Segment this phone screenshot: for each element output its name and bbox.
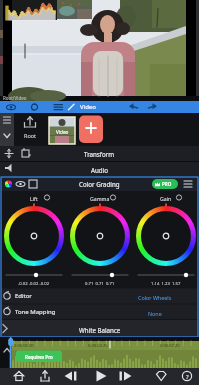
staticText: Transform (84, 150, 115, 158)
staticText: -0.02 -0.02 -0.02 (18, 281, 50, 287)
button[interactable] (48, 101, 66, 113)
staticText: Color Wheels (138, 294, 172, 301)
staticText: PRO (162, 181, 172, 187)
staticText: Tone Mapping (15, 308, 56, 316)
button[interactable] (1, 288, 198, 303)
staticText: Lift (30, 195, 38, 202)
staticText: Video (80, 103, 96, 111)
staticText: White Balance (79, 326, 121, 334)
staticText: Gain (160, 195, 172, 202)
button[interactable]: White Balance (0, 323, 199, 336)
button[interactable] (118, 368, 134, 385)
staticText: Audio (91, 166, 108, 174)
button[interactable] (72, 206, 128, 266)
staticText: 0.71 0.71 0.71 (85, 281, 115, 287)
button[interactable]: Audio (0, 162, 199, 177)
staticText: 0:00:03.25 (88, 343, 108, 349)
button[interactable] (1, 304, 198, 319)
button[interactable]: PRO (156, 179, 178, 189)
button[interactable] (26, 101, 42, 113)
button[interactable] (66, 101, 102, 113)
staticText: ? (186, 373, 189, 381)
button[interactable] (38, 368, 54, 385)
staticText: Color Grading (79, 180, 120, 188)
button[interactable] (49, 117, 75, 144)
staticText: Root/Video (3, 95, 27, 101)
button[interactable] (7, 206, 63, 266)
staticText: Requires Pro (25, 354, 53, 360)
button[interactable] (12, 368, 28, 385)
button[interactable] (153, 368, 169, 385)
button[interactable] (64, 368, 80, 385)
button[interactable] (79, 115, 103, 143)
button[interactable] (91, 368, 107, 385)
staticText: 1.14 1.23 1.57 (151, 281, 181, 287)
button[interactable]: Color Grading (0, 177, 199, 191)
staticText: 0:00:07.20 (160, 343, 180, 349)
button[interactable] (138, 206, 194, 266)
button[interactable]: None (120, 308, 190, 319)
staticText: Gamma (90, 195, 110, 202)
button[interactable]: Root (18, 129, 42, 141)
staticText: Video (56, 129, 69, 135)
staticText: 0:00:00.00 (14, 343, 34, 349)
staticText: Editor (15, 292, 32, 300)
button[interactable]: Color Wheels (120, 292, 190, 303)
button[interactable] (144, 101, 162, 113)
staticText: None (148, 310, 162, 317)
button[interactable] (124, 101, 142, 113)
button[interactable] (179, 368, 195, 385)
button[interactable]: Transform (0, 146, 199, 161)
staticText: Root (24, 132, 37, 139)
button[interactable] (0, 101, 20, 113)
